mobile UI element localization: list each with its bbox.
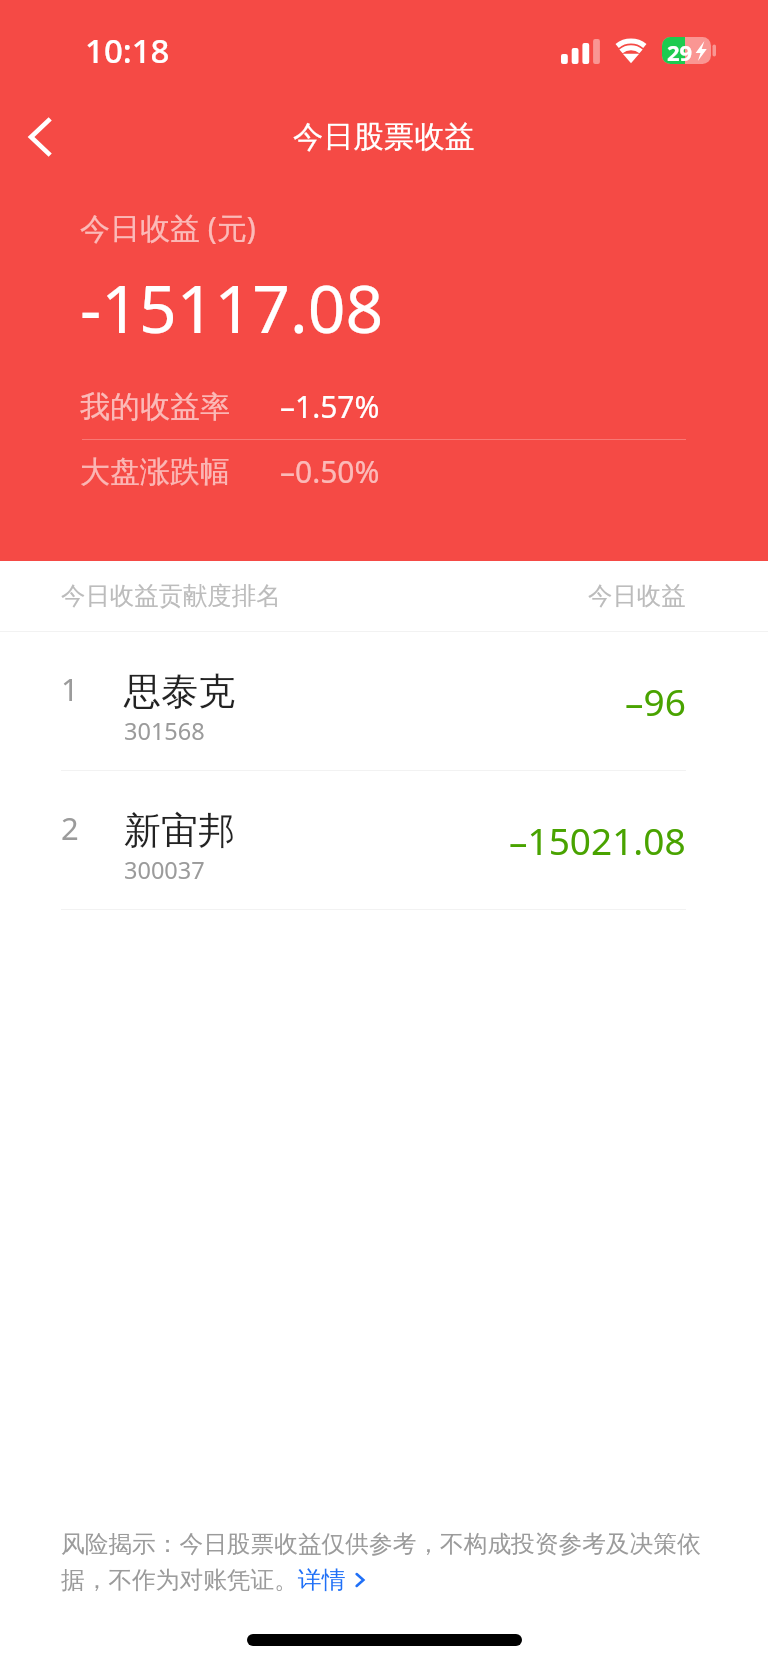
- staticText: 2: [61, 807, 79, 849]
- staticText: 今日收益 (元): [80, 207, 256, 248]
- staticText: 29: [667, 37, 693, 64]
- staticText: –1.57%: [280, 386, 380, 427]
- button[interactable]: 详情: [298, 1565, 366, 1595]
- staticText: 风险揭示：今日股票收益仅供参考，不构成投资参考及决策依: [61, 1529, 701, 1559]
- staticText: 300037: [124, 854, 205, 886]
- staticText: 1: [61, 668, 79, 710]
- button[interactable]: Back: [0, 97, 80, 177]
- staticText: 301568: [124, 715, 205, 747]
- staticText: –96: [625, 676, 686, 726]
- staticText: 今日收益: [588, 581, 686, 612]
- button[interactable]: 1: [0, 632, 768, 770]
- staticText: -15117.08: [80, 262, 384, 352]
- button[interactable]: 2: [0, 771, 768, 909]
- staticText: 据，不作为对账凭证。: [61, 1565, 298, 1595]
- staticText: –15021.08: [509, 815, 686, 865]
- staticText: 新宙邦: [124, 807, 235, 854]
- staticText: 详情: [298, 1565, 346, 1595]
- staticText: 大盘涨跌幅: [80, 453, 230, 491]
- staticText: 思泰克: [124, 668, 235, 715]
- staticText: 我的收益率: [80, 388, 230, 426]
- staticText: 今日股票收益: [293, 118, 475, 156]
- staticText: 10:18: [85, 28, 170, 73]
- staticText: –0.50%: [280, 451, 380, 492]
- staticText: 今日收益贡献度排名: [61, 581, 281, 612]
